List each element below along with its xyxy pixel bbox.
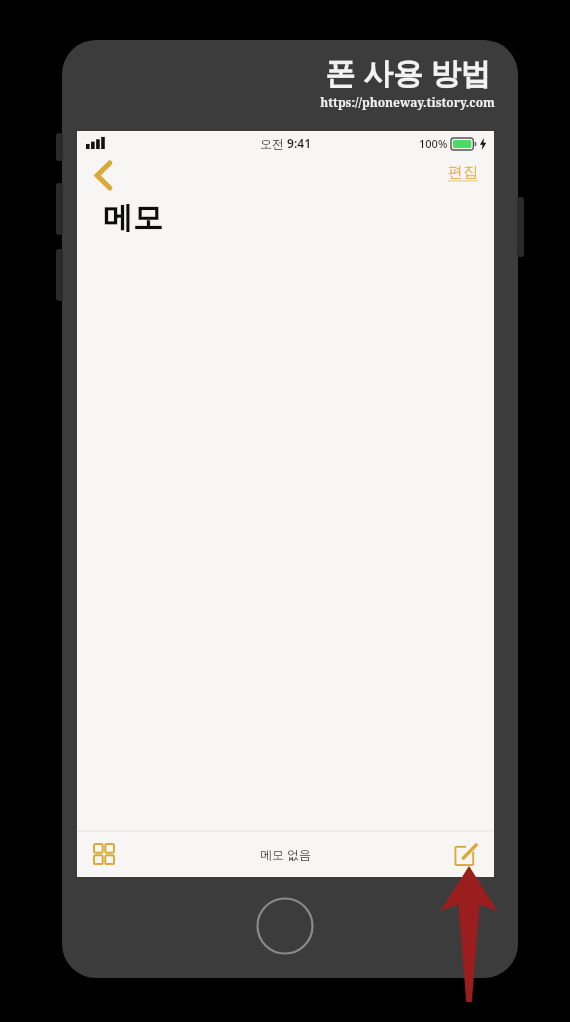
button[interactable]: 편집 [448, 163, 478, 182]
button[interactable]: New note [444, 832, 488, 876]
button[interactable]: Home [256, 897, 314, 955]
button[interactable]: Back [83, 157, 123, 193]
button[interactable]: View as gallery [83, 833, 125, 875]
staticText: 편집 [448, 163, 478, 182]
staticText: 메모 [103, 199, 163, 237]
staticText: https://phoneway.tistory.com [320, 94, 495, 110]
staticText: 폰 사용 방법 [325, 52, 491, 93]
staticText: 메모 없음 [260, 846, 312, 862]
staticText: 오전 9:41 [260, 135, 312, 151]
staticText: 100% [419, 136, 448, 151]
